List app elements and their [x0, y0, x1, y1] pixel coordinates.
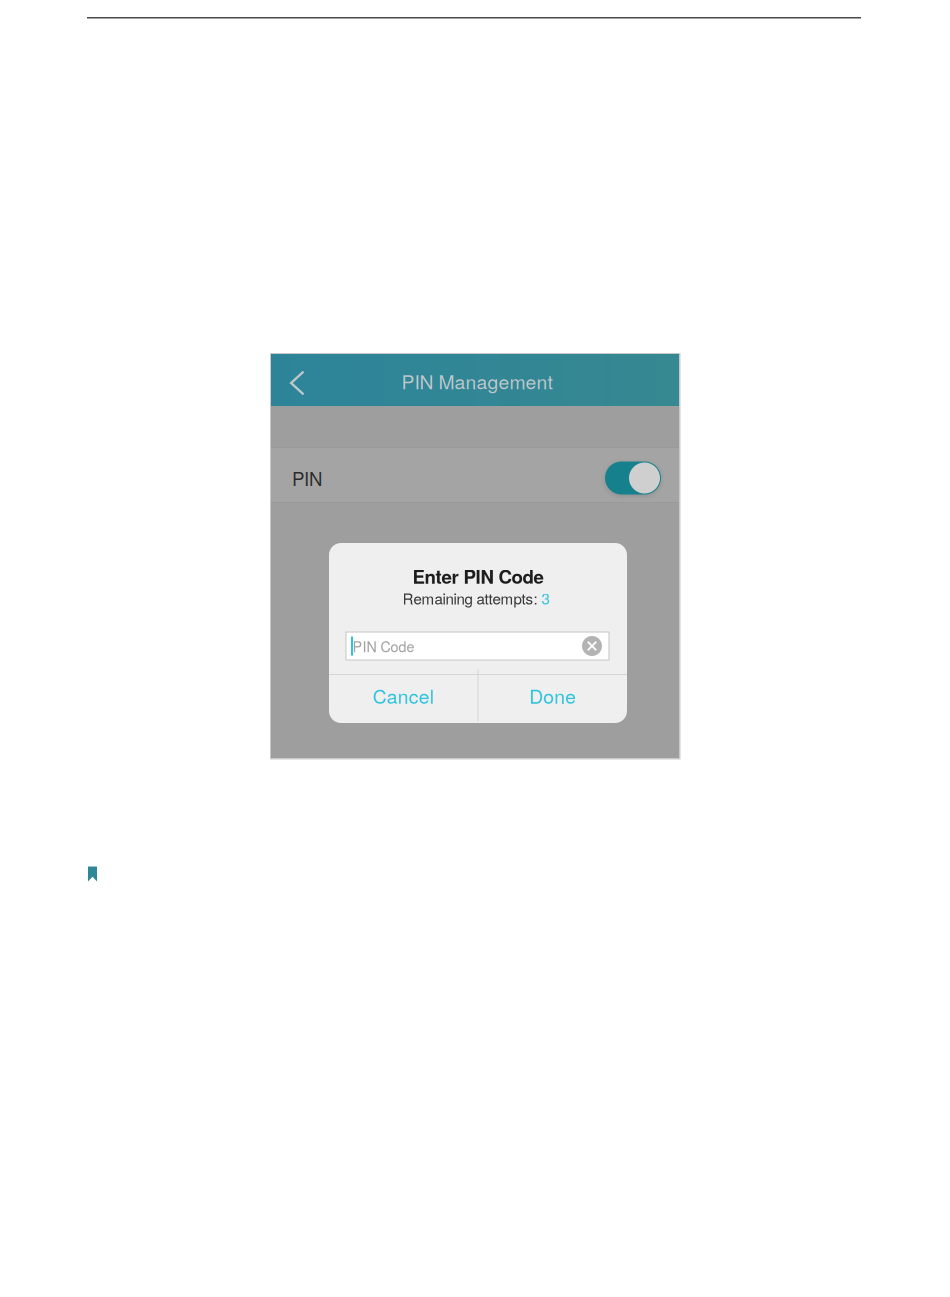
staticText: 3: [537, 587, 549, 609]
staticText: PIN: [292, 465, 322, 491]
staticText: Enter PIN Code: [412, 563, 543, 589]
button[interactable]: Cancel: [329, 671, 477, 720]
button[interactable]: Back: [271, 354, 324, 406]
button[interactable]: Done: [478, 671, 627, 720]
staticText: Cancel: [373, 682, 434, 709]
staticText: PIN Management: [401, 367, 552, 395]
staticText: PIN Code: [352, 636, 414, 656]
staticText: Remaining attempts:: [402, 587, 537, 609]
button[interactable]: PIN, on: [605, 458, 661, 491]
staticText: Done: [529, 682, 576, 709]
